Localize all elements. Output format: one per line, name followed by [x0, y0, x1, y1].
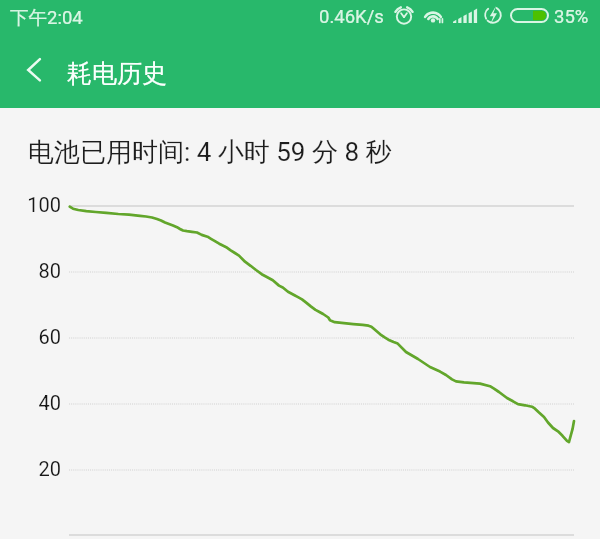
- staticText: 下午2:04: [10, 6, 83, 29]
- staticText: 40: [38, 391, 61, 414]
- staticText: 20: [38, 457, 61, 480]
- staticText: 60: [38, 325, 61, 348]
- staticText: 80: [38, 259, 61, 282]
- staticText: 100: [27, 193, 61, 216]
- staticText: 35%: [554, 6, 589, 28]
- button[interactable]: Back: [14, 49, 54, 89]
- staticText: 电池已用时间: 4 小时 59 分 8 秒: [28, 136, 392, 169]
- staticText: 耗电历史: [67, 58, 167, 89]
- staticText: 0.46K/s: [319, 6, 384, 28]
